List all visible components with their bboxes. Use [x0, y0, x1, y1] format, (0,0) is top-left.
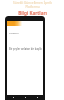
staticText: Sürekli Güncellenen İçerik: [13, 1, 52, 5]
staticText: Kategori: [9, 31, 19, 34]
button[interactable]: [7, 21, 43, 26]
button[interactable]: Home: [19, 95, 31, 100]
button[interactable]: Recents: [31, 95, 43, 100]
staticText: Platformu: [25, 5, 40, 9]
staticText: Bilgi Kartları: [18, 10, 47, 16]
staticText: Bir şeyler anlatan bir başlık: [9, 47, 42, 51]
button[interactable]: Back: [7, 95, 19, 100]
